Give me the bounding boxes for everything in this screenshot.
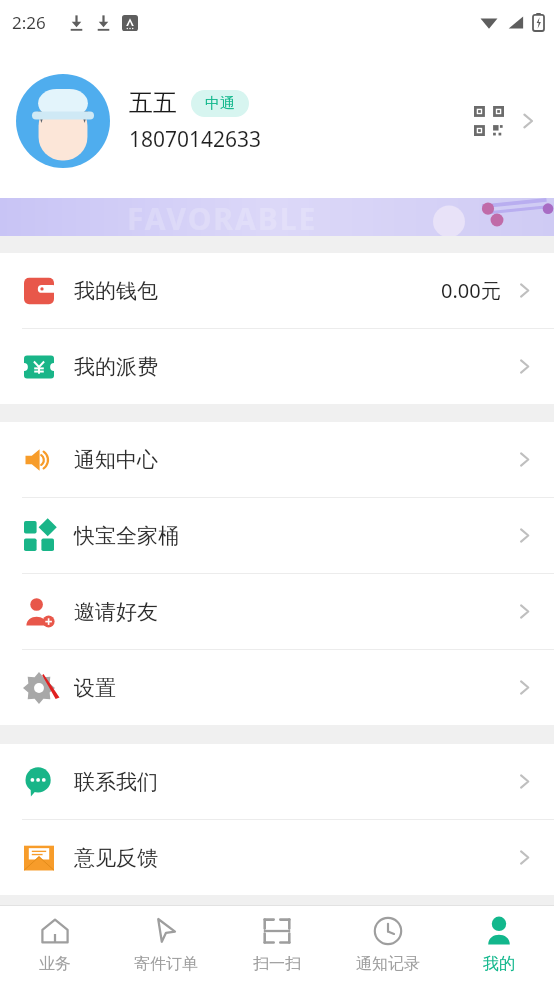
button[interactable]: 我的派费: [0, 329, 554, 404]
button[interactable]: 意见反馈: [0, 820, 554, 895]
staticText: 设置: [74, 675, 116, 701]
button[interactable]: QR code: [472, 104, 506, 138]
button[interactable]: 我的钱包: [0, 253, 554, 328]
staticText: 0.00元: [441, 277, 501, 304]
staticText: 邀请好友: [74, 599, 158, 625]
button[interactable]: 五五: [0, 44, 554, 198]
staticText: 我的: [483, 954, 515, 974]
staticText: 寄件订单: [134, 954, 198, 974]
button[interactable]: 快宝全家桶: [0, 498, 554, 573]
staticText: 通知记录: [356, 954, 420, 974]
button[interactable]: 联系我们: [0, 744, 554, 819]
staticText: FAVORABLE: [127, 198, 318, 236]
staticText: 五五: [129, 88, 177, 118]
button[interactable]: 邀请好友: [0, 574, 554, 649]
button[interactable]: 业务: [0, 906, 110, 984]
staticText: 中通: [205, 94, 235, 113]
staticText: 2:26: [12, 11, 46, 34]
staticText: 快宝全家桶: [74, 523, 179, 549]
staticText: 18070142633: [129, 125, 262, 154]
button[interactable]: 寄件订单: [110, 906, 221, 984]
staticText: 意见反馈: [74, 845, 158, 871]
button[interactable]: 扫一扫: [221, 906, 332, 984]
button[interactable]: 我的: [443, 906, 554, 984]
button[interactable]: 通知记录: [332, 906, 443, 984]
button[interactable]: 设置: [0, 650, 554, 725]
staticText: 我的钱包: [74, 278, 158, 304]
staticText: 通知中心: [74, 447, 158, 473]
button[interactable]: FAVORABLE: [0, 198, 554, 236]
staticText: 业务: [39, 954, 71, 974]
button[interactable]: 通知中心: [0, 422, 554, 497]
staticText: 联系我们: [74, 769, 158, 795]
staticText: 扫一扫: [253, 954, 301, 974]
staticText: 我的派费: [74, 354, 158, 380]
